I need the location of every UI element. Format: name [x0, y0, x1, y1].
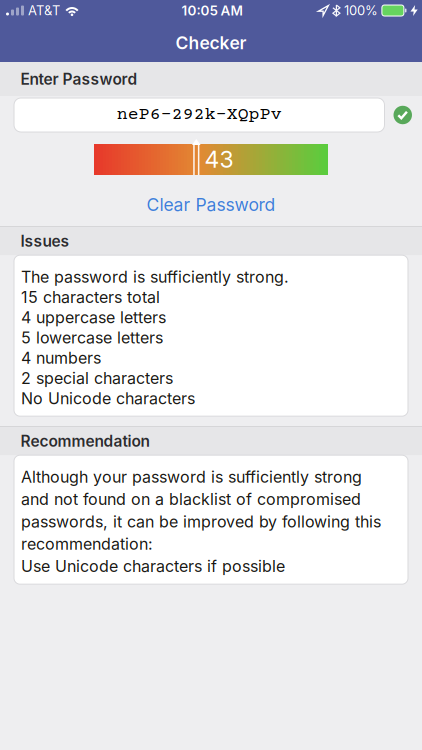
staticText: No Unicode characters: [21, 389, 195, 408]
staticText: 4 uppercase letters: [21, 308, 166, 327]
staticText: AT&T: [28, 3, 60, 18]
staticText: passwords, it can be improved by followi…: [21, 512, 381, 531]
staticText: 5 lowercase letters: [21, 328, 163, 347]
staticText: 10:05 AM: [181, 2, 242, 19]
staticText: recommendation:: [21, 534, 153, 554]
button[interactable]: neP6-292k-XQpPv: [14, 98, 384, 132]
button[interactable]: Clear Password: [146, 194, 275, 215]
staticText: Although your password is sufficiently s…: [21, 467, 362, 487]
staticText: Clear Password: [146, 194, 275, 215]
staticText: Issues: [20, 232, 69, 251]
staticText: Enter Password: [20, 70, 137, 88]
staticText: 2 special characters: [21, 368, 173, 388]
staticText: Use Unicode characters if possible: [21, 557, 285, 576]
staticText: 4 numbers: [21, 348, 101, 368]
staticText: 15 characters total: [21, 287, 160, 307]
staticText: 43: [204, 146, 233, 173]
staticText: neP6-292k-XQpPv: [117, 105, 282, 125]
staticText: Checker: [175, 32, 246, 54]
staticText: and not found on a blacklist of compromi…: [21, 489, 361, 509]
staticText: Recommendation: [20, 432, 149, 451]
staticText: The password is sufficiently strong.: [21, 267, 289, 287]
staticText: 100%: [344, 3, 378, 18]
